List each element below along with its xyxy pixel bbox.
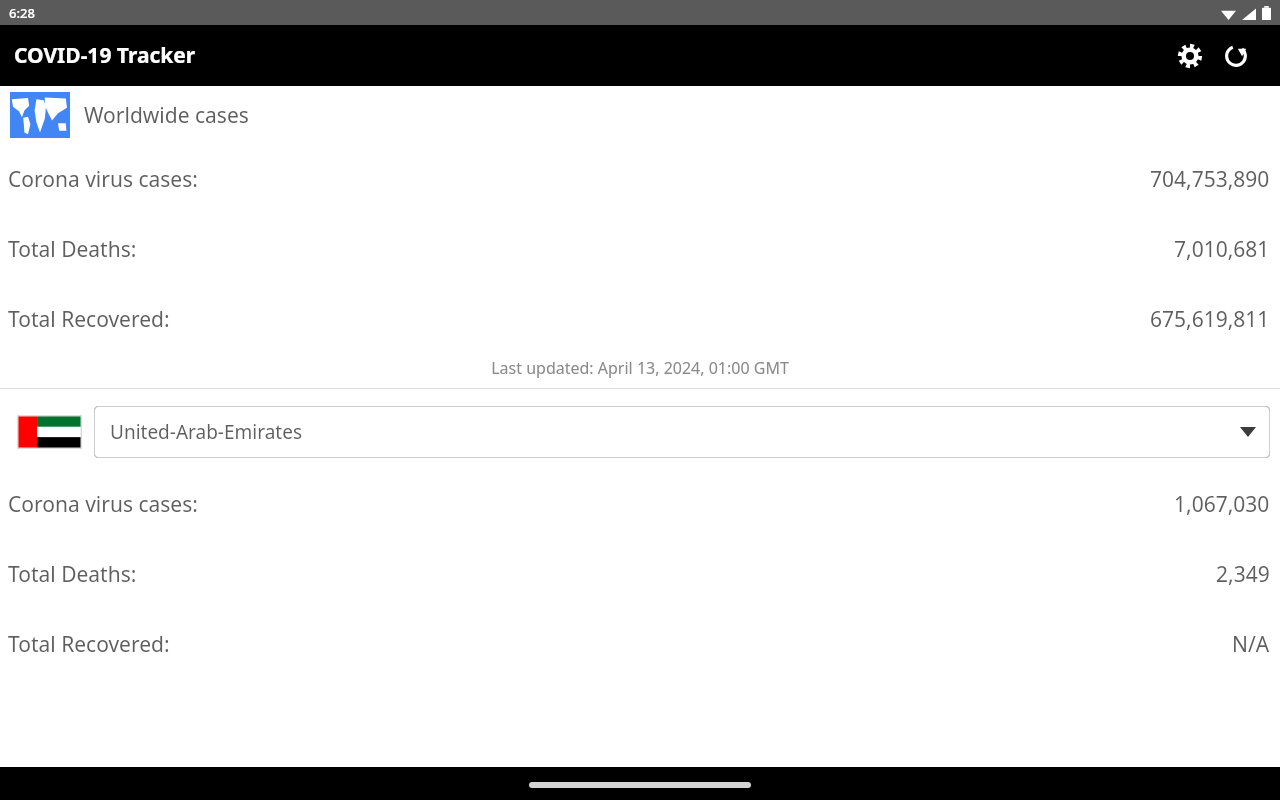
button[interactable]: Worldwide cases — [0, 92, 1280, 138]
staticText: Total Deaths: — [8, 560, 137, 589]
staticText: Total Recovered: — [8, 630, 170, 659]
button[interactable]: Total Deaths: — [0, 214, 1280, 284]
staticText: Worldwide cases — [84, 101, 249, 130]
staticText: Last updated: April 13, 2024, 01:00 GMT — [491, 357, 789, 379]
staticText: 2,349 — [1216, 560, 1270, 589]
button[interactable]: United-Arab-Emirates — [94, 406, 1270, 458]
staticText: COVID-19 Tracker — [14, 41, 196, 70]
staticText: 1,067,030 — [1174, 490, 1270, 519]
button[interactable]: Total Deaths: — [0, 539, 1280, 609]
button[interactable]: Refresh — [1213, 33, 1259, 79]
staticText: Corona virus cases: — [8, 490, 198, 519]
button[interactable]: Total Recovered: — [0, 609, 1280, 679]
staticText: Total Deaths: — [8, 235, 137, 264]
button[interactable]: Corona virus cases: — [0, 144, 1280, 214]
staticText: 675,619,811 — [1150, 305, 1270, 334]
staticText: Total Recovered: — [8, 305, 170, 334]
staticText: N/A — [1232, 630, 1270, 659]
staticText: Corona virus cases: — [8, 165, 198, 194]
button[interactable]: Total Recovered: — [0, 284, 1280, 354]
staticText: 7,010,681 — [1174, 235, 1270, 264]
staticText: United-Arab-Emirates — [110, 419, 303, 445]
staticText: 704,753,890 — [1150, 165, 1270, 194]
staticText: 6:28 — [9, 4, 35, 22]
button[interactable]: Settings — [1167, 33, 1213, 79]
button[interactable]: Corona virus cases: — [0, 469, 1280, 539]
